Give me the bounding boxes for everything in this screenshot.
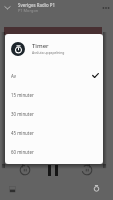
- staticText: Av: [11, 73, 17, 79]
- button[interactable]: Sleep timer: [91, 183, 102, 194]
- button[interactable]: 15 minuter: [5, 85, 103, 104]
- staticText: 60 minuter: [11, 149, 34, 155]
- staticText: Sveriges Radio P1: [18, 2, 56, 8]
- button[interactable]: Cast to device: [7, 184, 18, 195]
- button[interactable]: Pause: [48, 163, 58, 177]
- button[interactable]: Collapse: [0, 0, 15, 15]
- button[interactable]: Forward 15 seconds: [80, 163, 94, 177]
- button[interactable]: 60 minuter: [5, 142, 103, 161]
- staticText: P1 Morgon: [18, 8, 39, 13]
- staticText: Avsluta uppspelning: [32, 50, 65, 55]
- button[interactable]: 45 minuter: [5, 123, 103, 142]
- button[interactable]: 30 minuter: [5, 104, 103, 123]
- staticText: 15 minuter: [11, 92, 34, 98]
- staticText: 30 minuter: [11, 111, 34, 117]
- button[interactable]: Av: [5, 66, 103, 85]
- staticText: 45 minuter: [11, 130, 34, 136]
- button[interactable]: More options: [98, 0, 113, 15]
- staticText: Timer: [32, 42, 49, 50]
- button[interactable]: Rewind 15 seconds: [18, 163, 32, 177]
